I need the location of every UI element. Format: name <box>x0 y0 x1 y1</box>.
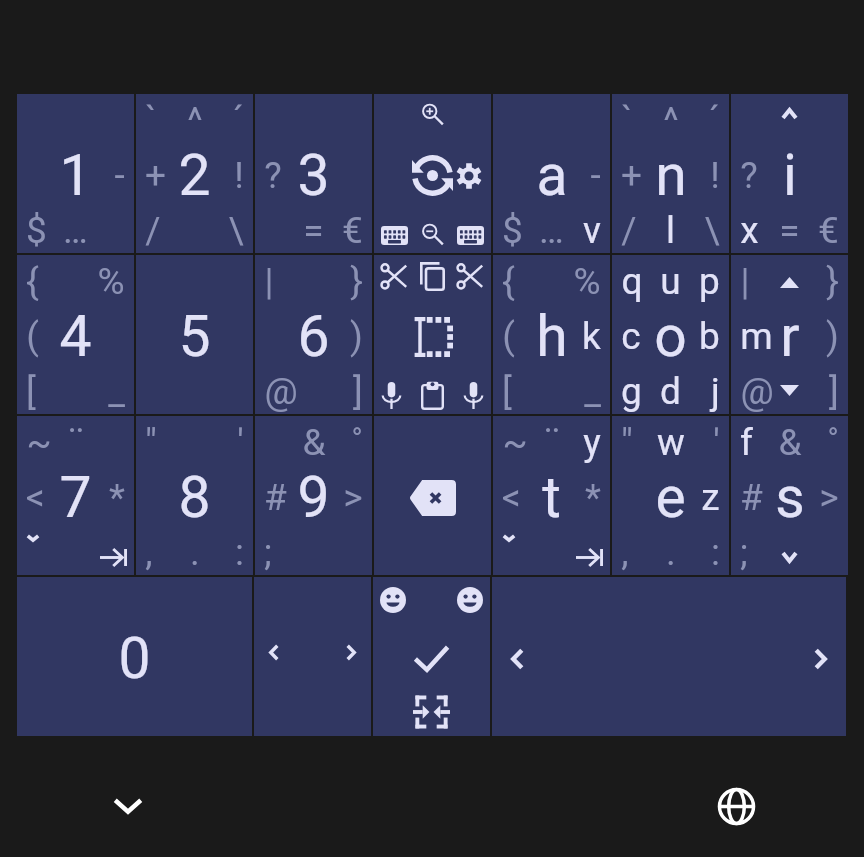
staticText: p <box>699 260 720 303</box>
staticText: 2 <box>178 142 211 209</box>
staticText: x <box>740 209 759 252</box>
staticText: : <box>711 531 720 574</box>
staticText: € <box>818 209 839 252</box>
staticText: + <box>145 154 166 197</box>
staticText: . <box>666 531 676 574</box>
staticText: } <box>350 260 363 303</box>
staticText: : <box>235 531 244 574</box>
staticText: ~ <box>502 421 528 464</box>
staticText: > <box>343 476 363 519</box>
staticText: ¨ <box>68 421 84 464</box>
button[interactable]: 5 <box>136 255 253 414</box>
staticText: * <box>585 476 601 519</box>
button[interactable]: Hide keyboard <box>106 784 150 828</box>
staticText: … <box>63 209 88 252</box>
staticText: 9 <box>297 464 330 531</box>
staticText: [ <box>26 370 36 413</box>
button[interactable]: e <box>612 416 729 575</box>
staticText: = <box>779 209 800 252</box>
button[interactable]: a <box>493 94 610 253</box>
button[interactable]: n <box>612 94 729 253</box>
button[interactable]: i <box>731 94 848 253</box>
staticText: ' <box>713 421 720 464</box>
staticText: ° <box>351 421 363 456</box>
button[interactable]: o <box>612 255 729 414</box>
staticText: r <box>780 303 800 370</box>
button[interactable]: t <box>493 416 610 575</box>
staticText: w <box>657 421 685 464</box>
button[interactable]: 1 <box>17 94 134 253</box>
staticText: 8 <box>178 464 211 531</box>
staticText: & <box>778 421 802 464</box>
button[interactable]: Cursor left right <box>254 577 371 736</box>
staticText: m <box>740 315 773 358</box>
button[interactable]: 6 <box>255 255 372 414</box>
button[interactable]: Enter <box>373 577 490 736</box>
button[interactable]: s <box>731 416 848 575</box>
staticText: ] <box>353 370 363 413</box>
staticText: v <box>583 209 601 252</box>
button[interactable]: r <box>731 255 848 414</box>
staticText: ^ <box>663 99 679 142</box>
staticText: # <box>264 476 287 519</box>
staticText: € <box>342 209 363 252</box>
staticText: " <box>621 421 633 464</box>
staticText: & <box>302 421 326 464</box>
staticText: q <box>621 260 643 303</box>
button[interactable]: 4 <box>17 255 134 414</box>
staticText: . <box>190 531 200 574</box>
button[interactable]: Space <box>492 577 846 736</box>
staticText: ` <box>145 99 157 142</box>
staticText: < <box>502 476 521 519</box>
staticText: k <box>582 315 601 358</box>
staticText: 5 <box>178 303 211 370</box>
staticText: ° <box>827 421 839 456</box>
staticText: @ <box>264 370 298 413</box>
staticText: ) <box>350 315 363 358</box>
staticText: " <box>145 421 157 464</box>
staticText: _ <box>108 370 125 413</box>
staticText: c <box>621 315 641 358</box>
staticText: a <box>536 142 568 209</box>
button[interactable]: Settings and zoom <box>374 94 491 253</box>
button[interactable]: Cut copy paste <box>374 255 491 414</box>
button[interactable]: Backspace <box>374 416 491 575</box>
staticText: ~ <box>26 421 52 464</box>
staticText: | <box>740 260 750 303</box>
staticText: ; <box>740 531 748 574</box>
staticText: s <box>775 464 805 531</box>
staticText: g <box>621 370 642 413</box>
staticText: ! <box>234 154 244 197</box>
staticText: t <box>542 464 561 531</box>
staticText: # <box>740 476 763 519</box>
button[interactable]: Switch language <box>714 784 758 828</box>
staticText: + <box>621 154 642 197</box>
staticText: ( <box>26 315 39 358</box>
button[interactable]: 9 <box>255 416 372 575</box>
staticText: $ <box>502 209 523 252</box>
staticText: b <box>699 315 720 358</box>
button[interactable]: 8 <box>136 416 253 575</box>
staticText: 7 <box>59 464 92 531</box>
staticText: e <box>655 464 686 531</box>
staticText: ´ <box>708 99 720 142</box>
staticText: { <box>26 260 39 303</box>
staticText: u <box>660 260 681 303</box>
staticText: @ <box>740 370 774 413</box>
button[interactable]: 3 <box>255 94 372 253</box>
staticText: | <box>264 260 274 303</box>
staticText: ' <box>237 421 244 464</box>
staticText: ? <box>740 154 758 197</box>
button[interactable]: 0 <box>17 577 252 736</box>
button[interactable]: 7 <box>17 416 134 575</box>
staticText: - <box>114 154 125 197</box>
staticText: ^ <box>187 99 203 142</box>
staticText: } <box>826 260 839 303</box>
button[interactable]: 2 <box>136 94 253 253</box>
button[interactable]: h <box>493 255 610 414</box>
staticText: ! <box>710 154 720 197</box>
staticText: 3 <box>297 142 330 209</box>
staticText: $ <box>26 209 47 252</box>
staticText: % <box>97 260 125 303</box>
staticText: ; <box>264 531 272 574</box>
